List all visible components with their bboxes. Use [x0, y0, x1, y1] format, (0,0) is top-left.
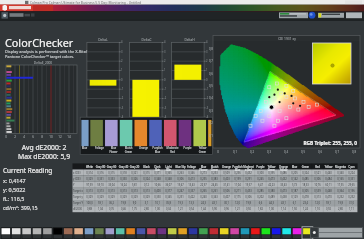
staticText: 0,224 — [346, 171, 357, 179]
staticText: ColorChecker — [5, 35, 74, 50]
staticText: 36,07 — [163, 183, 174, 191]
staticText: 0,395 — [266, 171, 277, 179]
staticText: 19,3 — [175, 201, 186, 209]
staticText: Gray 40 — [118, 165, 129, 173]
staticText: 18,33 — [300, 183, 311, 191]
staticText: 11,04 — [232, 183, 243, 191]
staticText: 1,11 — [346, 207, 357, 215]
staticText: 2 — [10, 135, 20, 144]
staticText: 3 — [164, 50, 171, 58]
staticText: 36,2 — [106, 201, 117, 209]
staticText: 0,205 — [289, 171, 300, 179]
staticText: Cyan — [346, 165, 357, 173]
staticText: 0,196 — [346, 189, 357, 197]
staticText: 0,316 — [95, 171, 106, 179]
staticText: Purple — [180, 146, 195, 154]
staticText: 1,44 — [198, 207, 209, 215]
staticText: 0 — [212, 150, 224, 159]
staticText: 24,45 — [209, 183, 220, 191]
staticText: 0,438 — [278, 195, 289, 203]
staticText: 0,165 — [335, 177, 346, 185]
staticText: Orange — [136, 146, 151, 154]
staticText: 33,43 — [278, 183, 289, 191]
staticText: 1,21 — [232, 207, 243, 215]
staticText: 10,76 — [312, 183, 323, 191]
staticText: 0,8 — [205, 47, 213, 56]
staticText: 0,6 — [314, 150, 326, 159]
staticText: 0,348 — [163, 177, 174, 185]
staticText: 22,97 — [198, 183, 209, 191]
staticText: Display analysis is performed with the X… — [5, 49, 95, 61]
staticText: 19,37 — [243, 183, 254, 191]
staticText: 0,306 — [243, 195, 254, 203]
staticText: 0,315 — [141, 171, 152, 179]
staticText: 0,236 — [232, 171, 243, 179]
staticText: Foliage — [92, 146, 107, 154]
staticText: 0,313 — [84, 189, 95, 197]
staticText: -3 — [164, 106, 171, 114]
staticText: 0,92 — [323, 207, 334, 215]
staticText: 4 — [164, 40, 171, 48]
staticText: 0,318 — [118, 171, 129, 179]
staticText: 9,0 — [129, 201, 140, 209]
staticText: Foliage — [186, 165, 197, 173]
staticText: Blue Flower — [198, 165, 209, 173]
staticText: 0,313 — [312, 195, 323, 203]
staticText: 23,4 — [300, 201, 311, 209]
staticText: 0,331 — [346, 177, 357, 185]
staticText: 59,1 — [323, 201, 334, 209]
staticText: 3,1 — [141, 201, 152, 209]
staticText: 13,43 — [186, 183, 197, 191]
staticText: Purplish Blue — [150, 146, 165, 154]
staticText: 1,75 — [129, 207, 140, 215]
staticText: -1 — [164, 87, 171, 95]
staticText: Yellow Green — [195, 146, 210, 154]
staticText: Blue Flower — [106, 146, 121, 154]
staticText: 0,76 — [106, 207, 117, 215]
staticText: 19,8 — [118, 201, 129, 209]
staticText: 17,55 — [335, 183, 346, 191]
staticText: 0,364 — [335, 189, 346, 197]
staticText: Blue — [289, 165, 300, 173]
staticText: 0,2 — [205, 121, 213, 130]
staticText: 0,383 — [209, 177, 220, 185]
staticText: 1,82 — [255, 207, 266, 215]
staticText: 0,330 — [118, 177, 129, 185]
staticText: 0,340 — [335, 171, 346, 179]
staticText: Orange — [221, 165, 232, 173]
staticText: Yellow — [323, 165, 334, 173]
staticText: 0,253 — [209, 171, 220, 179]
staticText: 0,273 — [198, 171, 209, 179]
staticText: 1 — [164, 68, 171, 76]
staticText: 0,422 — [186, 195, 197, 203]
staticText: 0,313 — [118, 189, 129, 197]
staticText: 0,313 — [141, 189, 152, 197]
staticText: Magenta — [335, 165, 346, 173]
staticText: Gray 80 — [95, 165, 106, 173]
staticText: 0,261 — [209, 189, 220, 197]
staticText: 0,285 — [255, 189, 266, 197]
staticText: 1 — [121, 68, 128, 76]
staticText: 0,440 — [323, 171, 334, 179]
staticText: cd/m²: 399,15 — [3, 204, 38, 211]
staticText: 0,252 — [346, 195, 357, 203]
staticText: 0,329 — [106, 195, 117, 203]
staticText: DeltaH — [173, 38, 206, 48]
staticText: 0,489 — [266, 195, 277, 203]
staticText: 0,306 — [312, 177, 323, 185]
staticText: Max dE2000: 5,9 — [2, 152, 86, 172]
staticText: 0,305 — [300, 189, 311, 197]
staticText: Blue — [77, 146, 92, 154]
staticText: 0,6 — [205, 72, 213, 81]
staticText: 0,346 — [186, 171, 197, 179]
staticText: 0,326 — [129, 177, 140, 185]
staticText: 0,255 — [198, 177, 209, 185]
staticText: 6,6 — [255, 201, 266, 209]
staticText: 0,345 — [163, 195, 174, 203]
staticText: 10 — [46, 135, 56, 144]
staticText: 0,473 — [266, 177, 277, 185]
staticText: 0,484 — [323, 177, 334, 185]
staticText: RGB Triplet: 255, 255, 0 — [252, 140, 357, 154]
staticText: 0,365 — [163, 171, 174, 179]
staticText: 0,324 — [141, 177, 152, 185]
